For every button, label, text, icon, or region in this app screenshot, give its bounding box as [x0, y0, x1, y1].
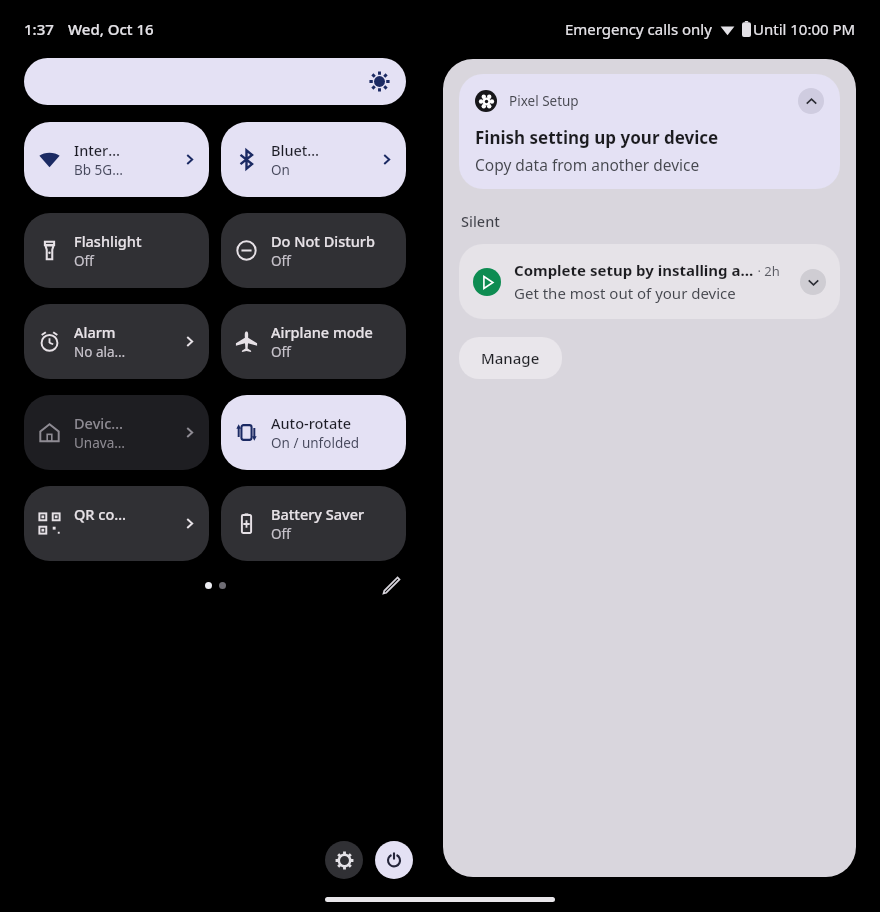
staticText: Complete setup by installing a…: [514, 260, 754, 280]
button[interactable]: Alarm: [24, 304, 209, 379]
staticText: Emergency calls only: [565, 19, 712, 39]
staticText: QR code scanner: [74, 504, 128, 524]
staticText: No alarm set: [74, 343, 128, 361]
staticText: Auto-rotate: [271, 413, 352, 433]
staticText: Off: [271, 525, 291, 543]
staticText: On / unfolded: [271, 434, 360, 452]
staticText: Until 10:00 PM: [753, 19, 856, 39]
button[interactable]: Bluetooth: [221, 122, 406, 197]
staticText: 1:37: [24, 19, 54, 39]
staticText: Bb 5GHz: [74, 161, 128, 179]
staticText: Battery Saver: [271, 504, 365, 524]
staticText: Off: [74, 252, 94, 270]
button[interactable]: Airplane mode: [221, 304, 406, 379]
button[interactable]: Expand: [800, 269, 826, 295]
button[interactable]: QR code scanner: [24, 486, 209, 561]
staticText: On: [271, 161, 290, 179]
staticText: Manage: [481, 348, 540, 368]
button[interactable]: Do Not Disturb: [221, 213, 406, 288]
staticText: Wed, Oct 16: [68, 19, 154, 39]
staticText: Internet: [74, 140, 128, 160]
staticText: Do Not Disturb: [271, 231, 375, 251]
staticText: Pixel Setup: [509, 92, 579, 110]
staticText: Alarm: [74, 322, 116, 342]
staticText: · 2h: [754, 262, 780, 280]
button[interactable]: Flashlight: [24, 213, 209, 288]
button[interactable]: Complete setup by installing a…: [459, 244, 840, 319]
staticText: Get the most out of your device: [514, 283, 736, 303]
button[interactable]: Brightness: [24, 58, 406, 105]
button[interactable]: Power: [375, 841, 413, 879]
staticText: Silent: [461, 211, 500, 231]
button[interactable]: Collapse: [798, 88, 824, 114]
staticText: Off: [271, 343, 291, 361]
staticText: Airplane mode: [271, 322, 373, 342]
staticText: Finish setting up your device: [475, 126, 719, 149]
staticText: Off: [271, 252, 291, 270]
button[interactable]: Internet: [24, 122, 209, 197]
staticText: Copy data from another device: [475, 154, 700, 175]
button[interactable]: Manage: [459, 337, 562, 379]
button[interactable]: Edit tiles: [376, 570, 406, 600]
button[interactable]: Battery Saver: [221, 486, 406, 561]
staticText: Bluetooth: [271, 140, 325, 160]
button[interactable]: Device controls: [24, 395, 209, 470]
staticText: Unavailable: [74, 434, 128, 452]
button[interactable]: Pixel Setup: [459, 74, 840, 189]
staticText: Flashlight: [74, 231, 142, 251]
button[interactable]: Auto-rotate: [221, 395, 406, 470]
staticText: Device controls: [74, 413, 128, 433]
button[interactable]: Settings: [325, 841, 363, 879]
